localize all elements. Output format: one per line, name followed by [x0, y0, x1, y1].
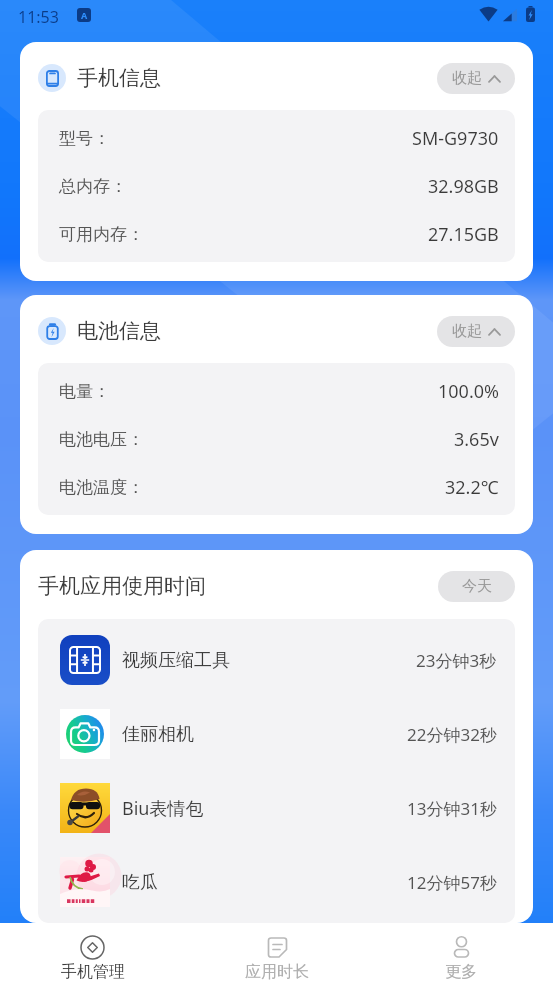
- button[interactable]: 收起: [437, 316, 515, 347]
- staticText: 23分钟3秒: [416, 649, 497, 672]
- button[interactable]: 收起: [437, 63, 515, 94]
- staticText: 100.0%: [438, 379, 499, 404]
- staticText: 22分钟32秒: [407, 723, 497, 746]
- staticText: 32.2℃: [445, 475, 499, 500]
- staticText: 电量：: [59, 381, 110, 402]
- staticText: 手机管理: [61, 962, 125, 982]
- staticText: 32.98GB: [428, 174, 499, 199]
- staticText: Biu表情包: [122, 796, 204, 821]
- staticText: 12分钟57秒: [407, 871, 497, 894]
- button[interactable]: 吃瓜: [60, 845, 497, 919]
- other: 更多: [449, 935, 474, 960]
- button[interactable]: 佳丽相机: [60, 697, 497, 771]
- staticText: 更多: [445, 962, 477, 982]
- button[interactable]: 手机管理: [0, 923, 185, 984]
- button[interactable]: 更多: [369, 923, 553, 984]
- staticText: 11:53: [18, 6, 59, 28]
- staticText: 应用时长: [245, 962, 309, 982]
- staticText: 型号：: [59, 128, 110, 149]
- button[interactable]: Biu表情包: [60, 771, 497, 845]
- staticText: 佳丽相机: [122, 723, 194, 746]
- staticText: 今天: [462, 577, 492, 596]
- staticText: 收起: [452, 322, 482, 341]
- staticText: 3.65v: [454, 427, 499, 452]
- button[interactable]: 应用时长: [185, 923, 369, 984]
- staticText: 总内存：: [59, 176, 127, 197]
- staticText: 手机应用使用时间: [38, 573, 206, 599]
- staticText: 电池电压：: [59, 429, 144, 450]
- staticText: 吃瓜: [122, 871, 158, 894]
- staticText: 视频压缩工具: [122, 649, 230, 672]
- staticText: 收起: [452, 69, 482, 88]
- staticText: A: [81, 9, 88, 21]
- button[interactable]: 今天: [438, 571, 515, 602]
- staticText: 27.15GB: [428, 222, 499, 247]
- button[interactable]: 视频压缩工具: [60, 623, 497, 697]
- staticText: 电池信息: [77, 318, 161, 344]
- staticText: SM-G9730: [412, 126, 499, 151]
- staticText: 电池温度：: [59, 477, 144, 498]
- staticText: 可用内存：: [59, 224, 144, 245]
- staticText: 13分钟31秒: [407, 797, 497, 820]
- staticText: 手机信息: [77, 65, 161, 91]
- other: 应用时长: [265, 935, 290, 960]
- other: 手机管理: [80, 935, 105, 960]
